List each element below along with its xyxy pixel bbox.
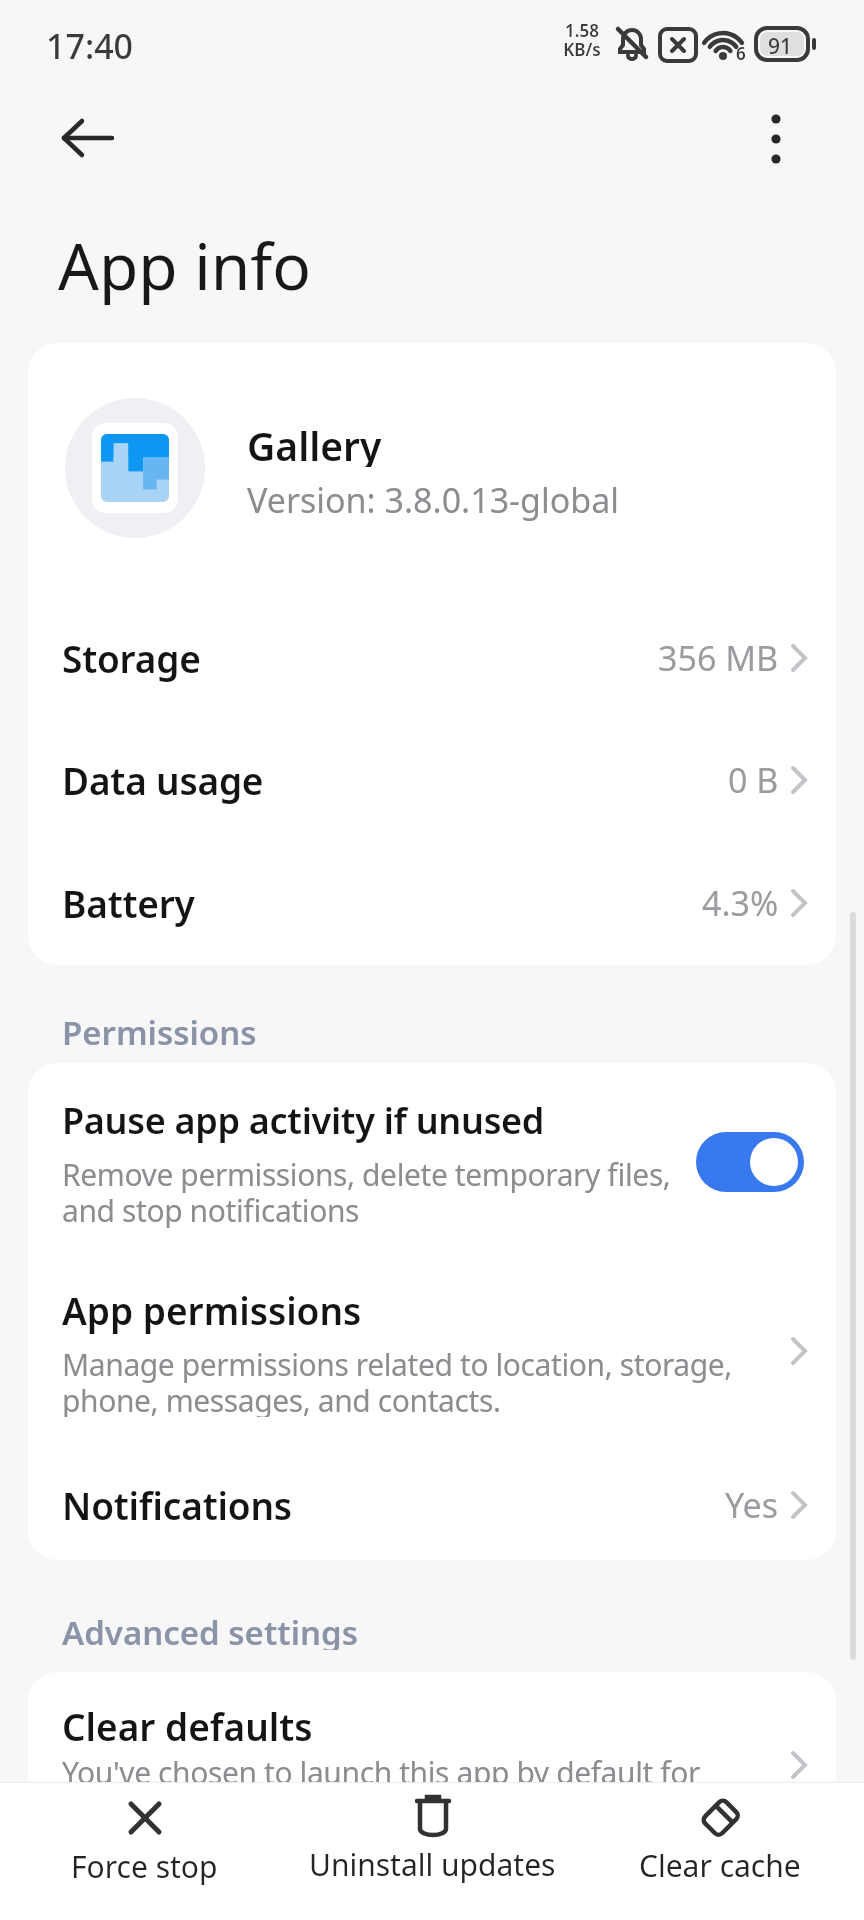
button[interactable]: Force stop bbox=[0, 1782, 288, 1920]
staticText: Gallery bbox=[247, 419, 382, 467]
staticText: Remove permissions, delete temporary fil… bbox=[62, 1154, 671, 1228]
staticText: Advanced settings bbox=[62, 1610, 359, 1650]
button[interactable]: Pause app activity if unused bbox=[28, 1096, 836, 1228]
staticText: Uninstall updates bbox=[309, 1844, 556, 1885]
staticText: Battery bbox=[62, 878, 195, 928]
staticText: Data usage bbox=[62, 755, 264, 805]
button[interactable]: Battery bbox=[28, 853, 836, 953]
button[interactable]: Notifications bbox=[28, 1455, 836, 1555]
staticText: 356 MB bbox=[658, 635, 779, 681]
staticText: Version: 3.8.0.13-global bbox=[247, 477, 620, 523]
button[interactable]: Storage bbox=[28, 608, 836, 708]
button[interactable]: Clear cache bbox=[576, 1782, 864, 1920]
staticText: Notifications bbox=[62, 1480, 292, 1530]
staticText: 17:40 bbox=[46, 23, 134, 69]
staticText: You've chosen to launch this app by defa… bbox=[62, 1752, 701, 1793]
staticText: App info bbox=[58, 222, 312, 309]
staticText: Yes bbox=[725, 1482, 779, 1528]
button[interactable] bbox=[746, 104, 806, 174]
staticText: 6 bbox=[736, 42, 746, 65]
staticText: App permissions bbox=[62, 1285, 362, 1335]
button[interactable]: Data usage bbox=[28, 730, 836, 830]
staticText: 4.3% bbox=[702, 880, 779, 926]
staticText: 91 bbox=[768, 32, 793, 61]
button[interactable]: App permissions bbox=[28, 1285, 836, 1417]
button[interactable]: Uninstall updates bbox=[288, 1782, 576, 1920]
staticText: Manage permissions related to location, … bbox=[62, 1344, 732, 1417]
staticText: Force stop bbox=[71, 1846, 218, 1887]
staticText: Storage bbox=[62, 633, 201, 683]
staticText: 0 B bbox=[728, 757, 779, 803]
button[interactable] bbox=[696, 1132, 804, 1192]
staticText: Clear cache bbox=[639, 1845, 801, 1886]
staticText: Permissions bbox=[62, 1010, 257, 1050]
staticText: Pause app activity if unused bbox=[62, 1096, 545, 1145]
button[interactable] bbox=[48, 106, 128, 170]
staticText: Clear defaults bbox=[62, 1701, 313, 1749]
staticText: 1.58 KB/s bbox=[563, 19, 601, 61]
